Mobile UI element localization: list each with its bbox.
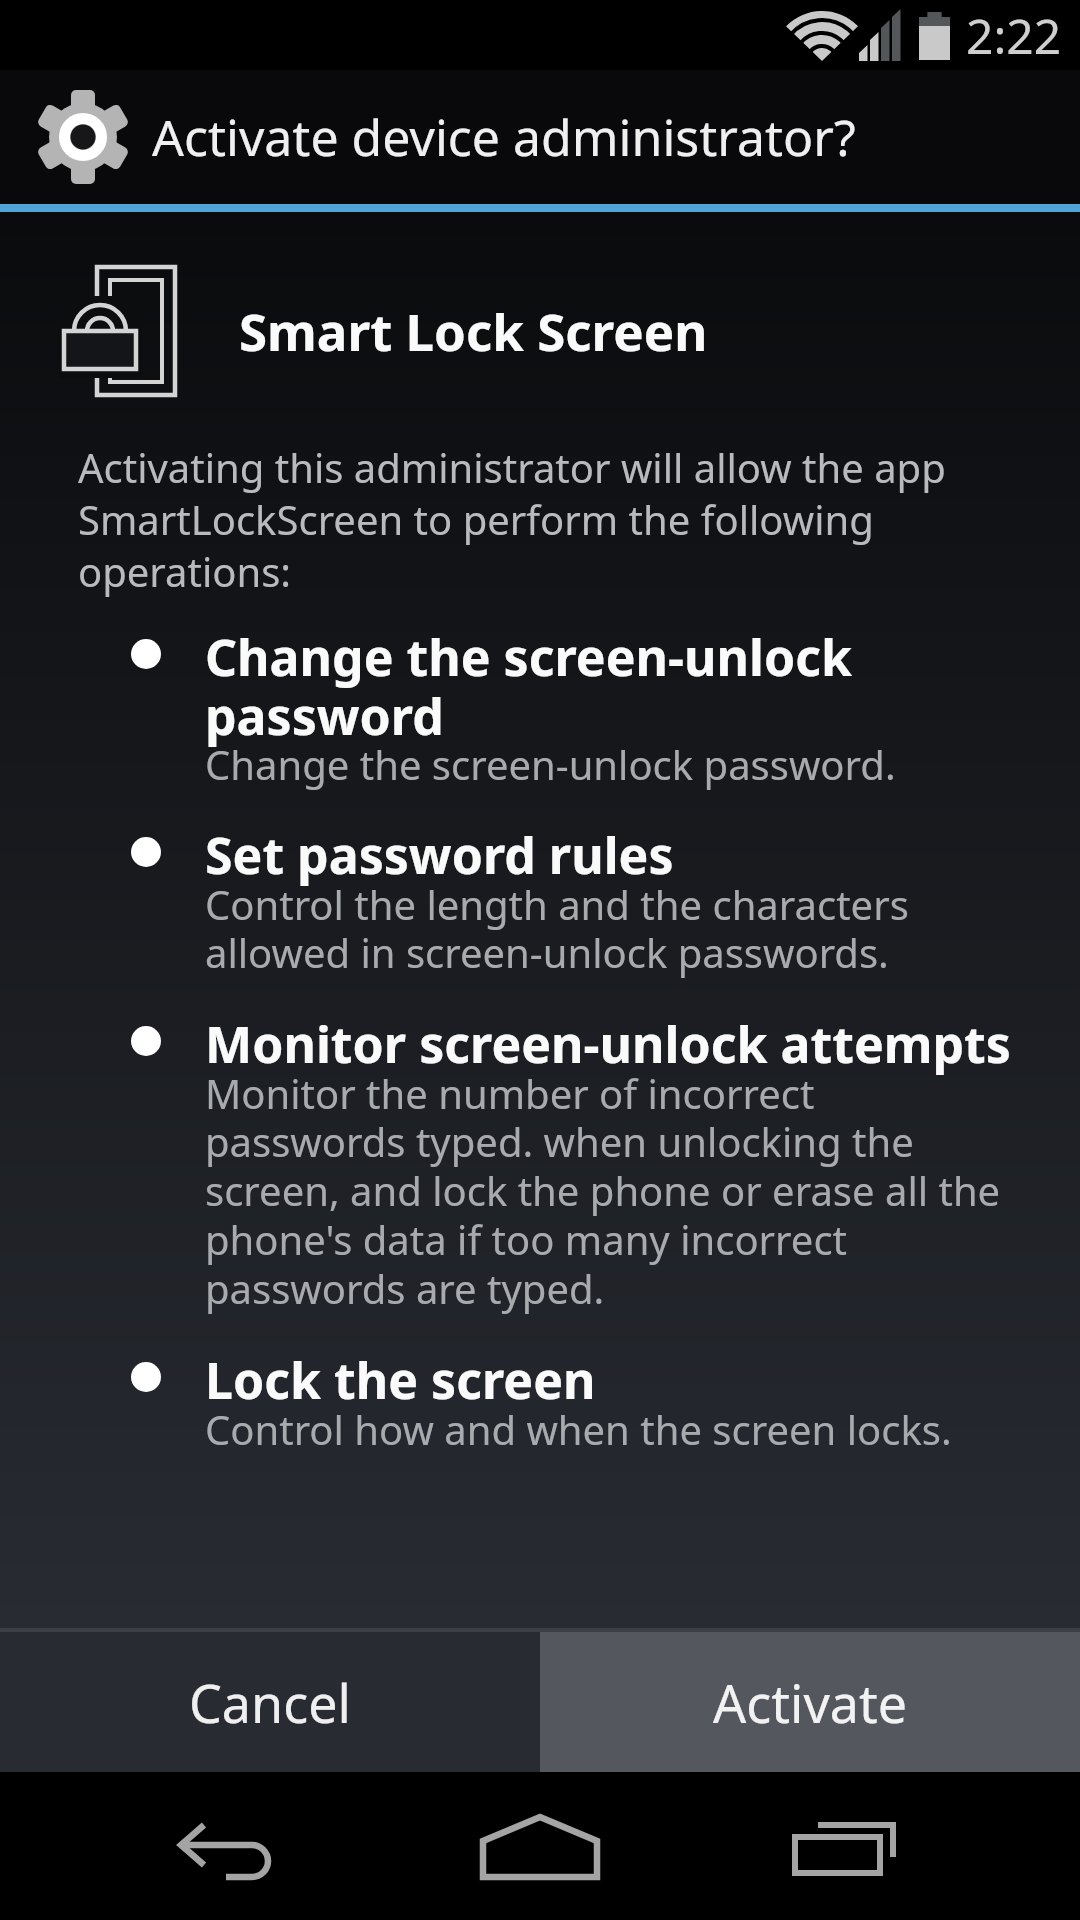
button[interactable] <box>792 1801 902 1891</box>
staticText: Change the screen-unlock password. <box>205 737 896 791</box>
staticText: Monitor screen-unlock attempts <box>205 1010 1011 1078</box>
button[interactable]: Cancel <box>0 1632 540 1772</box>
staticText: Activating this administrator will allow… <box>78 440 946 599</box>
staticText: Lock the screen <box>205 1346 596 1414</box>
staticText: 2:22 <box>966 3 1062 68</box>
staticText: Activate device administrator? <box>152 103 856 171</box>
staticText: Smart Lock Screen <box>239 296 708 365</box>
staticText: Control the length and the characters al… <box>205 877 909 980</box>
staticText: Control how and when the screen locks. <box>205 1402 952 1456</box>
staticText: Monitor the number of incorrect password… <box>205 1066 1001 1316</box>
staticText: Change the screen-unlock password <box>205 623 852 749</box>
staticText: Set password rules <box>205 821 674 889</box>
staticText: Cancel <box>189 1667 351 1738</box>
button[interactable] <box>478 1801 602 1891</box>
button[interactable] <box>178 1801 298 1891</box>
staticText: Activate <box>713 1667 908 1738</box>
button[interactable]: Activate <box>540 1632 1080 1772</box>
